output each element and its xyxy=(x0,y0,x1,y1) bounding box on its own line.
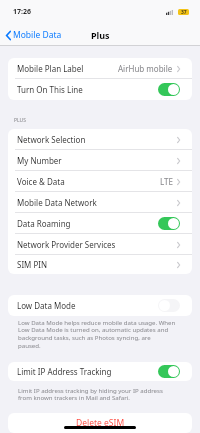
staticText: Plus xyxy=(91,29,110,41)
staticText: Low Data Mode xyxy=(17,300,76,311)
button[interactable]: Turn On This Line xyxy=(158,83,180,96)
staticText: My Number xyxy=(17,155,62,166)
button[interactable]: Data Roaming xyxy=(8,213,192,234)
staticText: 17:26 xyxy=(13,7,31,17)
staticText: LTE xyxy=(160,176,173,187)
button[interactable]: Mobile Data xyxy=(6,29,62,41)
staticText: Low Data Mode helps reduce mobile data u… xyxy=(18,318,176,350)
staticText: Limit IP address tracking by hiding your… xyxy=(18,386,163,402)
staticText: 37 xyxy=(181,9,187,15)
staticText: SIM PIN xyxy=(17,259,48,270)
staticText: Limit IP Address Tracking xyxy=(17,366,112,377)
staticText: PLUS xyxy=(14,117,26,124)
button[interactable]: Data Roaming xyxy=(158,217,180,230)
button[interactable]: Network Provider Services xyxy=(8,234,192,255)
button[interactable]: Mobile Plan Label xyxy=(8,58,192,79)
button[interactable]: Mobile Data Network xyxy=(8,192,192,213)
staticText: Mobile Data Network xyxy=(17,197,97,208)
button[interactable]: Delete eSIM xyxy=(8,413,192,433)
button[interactable]: SIM PIN xyxy=(8,255,192,274)
button[interactable]: Network Selection xyxy=(8,129,192,150)
button[interactable]: Turn On This Line xyxy=(8,79,192,100)
staticText: Delete eSIM xyxy=(76,417,125,429)
staticText: Turn On This Line xyxy=(17,84,83,95)
staticText: Voice & Data xyxy=(17,176,65,187)
staticText: Mobile Data xyxy=(13,29,62,41)
button[interactable]: My Number xyxy=(8,150,192,171)
staticText: Network Provider Services xyxy=(17,239,116,250)
button[interactable]: Voice & Data xyxy=(8,171,192,192)
button[interactable]: Low Data Mode xyxy=(158,299,180,312)
button[interactable]: Low Data Mode xyxy=(8,295,192,316)
staticText: Mobile Plan Label xyxy=(17,63,84,74)
staticText: AirHub mobile xyxy=(118,63,173,74)
staticText: Data Roaming xyxy=(17,218,71,229)
staticText: Network Selection xyxy=(17,134,86,145)
button[interactable]: Limit IP Address Tracking xyxy=(158,365,180,378)
button[interactable]: Limit IP Address Tracking xyxy=(8,362,192,381)
